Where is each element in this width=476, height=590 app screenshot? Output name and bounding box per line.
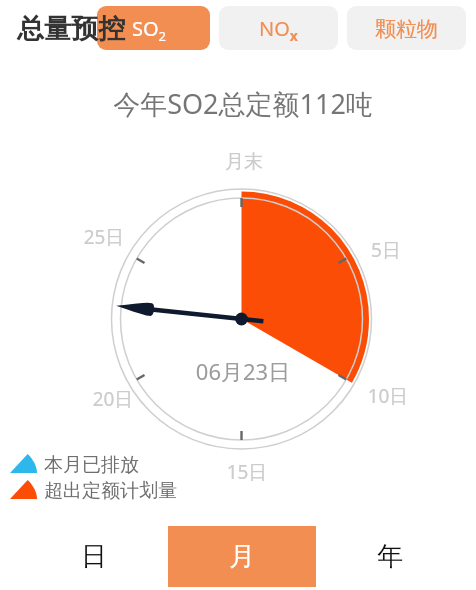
- staticText: 月末: [199, 150, 289, 174]
- button[interactable]: 超出定额计划量: [10, 477, 177, 501]
- button[interactable]: 本月已排放: [10, 451, 139, 475]
- staticText: 月: [229, 540, 255, 573]
- staticText: 总量预控: [17, 12, 125, 46]
- staticText: 20日: [68, 386, 158, 412]
- staticText: 06月23日: [5, 356, 476, 386]
- button[interactable]: 年: [316, 526, 464, 587]
- staticText: SO2: [132, 15, 167, 45]
- staticText: 年: [377, 540, 403, 573]
- button[interactable]: 颗粒物: [347, 6, 466, 50]
- staticText: 超出定额计划量: [44, 479, 177, 503]
- staticText: 10日: [343, 383, 433, 409]
- button[interactable]: 月: [168, 526, 316, 587]
- button[interactable]: SO2: [97, 6, 210, 50]
- staticText: 5日: [341, 237, 431, 263]
- button[interactable]: 日: [20, 526, 168, 587]
- staticText: NOx: [259, 15, 298, 46]
- staticText: 日: [81, 540, 107, 573]
- staticText: 15日: [202, 459, 292, 485]
- button[interactable]: NOx: [219, 6, 338, 50]
- staticText: 颗粒物: [375, 16, 438, 42]
- staticText: 今年SO2总定额112吨: [5, 85, 476, 122]
- staticText: 本月已排放: [44, 453, 139, 477]
- staticText: 25日: [59, 224, 149, 250]
